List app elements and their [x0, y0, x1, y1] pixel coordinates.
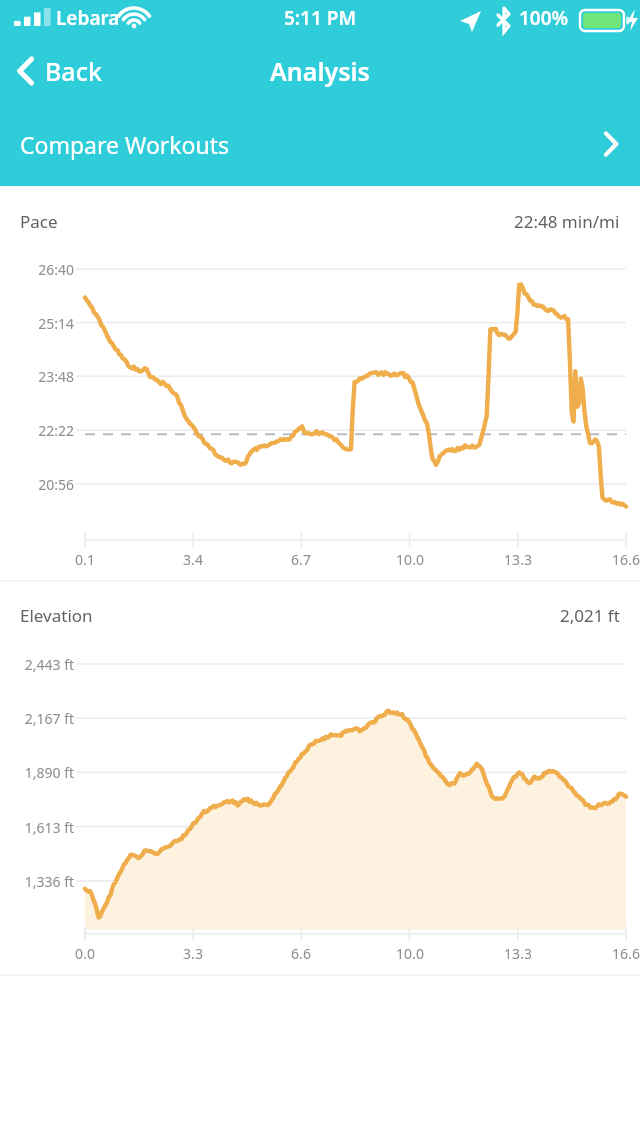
staticText: 3.3: [153, 944, 233, 963]
staticText: 6.6: [261, 944, 341, 963]
staticText: Pace: [20, 210, 58, 233]
staticText: 2,443 ft: [0, 655, 74, 674]
staticText: 25:14: [0, 314, 74, 333]
staticText: 5:11 PM: [284, 5, 357, 31]
staticText: 16.6: [586, 550, 640, 569]
staticText: 1,613 ft: [0, 818, 74, 837]
staticText: Compare Workouts: [20, 129, 230, 160]
staticText: 2,021 ft: [560, 604, 620, 627]
staticText: 10.0: [370, 944, 450, 963]
staticText: Back: [45, 54, 102, 88]
staticText: 100%: [519, 5, 569, 31]
staticText: 22:22: [0, 421, 74, 440]
staticText: 23:48: [0, 367, 74, 386]
staticText: 2,167 ft: [0, 709, 74, 728]
staticText: 0.1: [45, 550, 125, 569]
staticText: 10.0: [370, 550, 450, 569]
staticText: 22:48 min/mi: [514, 210, 620, 233]
staticText: 0.0: [45, 944, 125, 963]
staticText: 13.3: [478, 944, 558, 963]
staticText: 16.6: [586, 944, 640, 963]
staticText: Elevation: [20, 604, 93, 627]
button[interactable]: Compare Workouts: [0, 102, 640, 186]
staticText: 6.7: [261, 550, 341, 569]
staticText: 1,336 ft: [0, 872, 74, 891]
staticText: 1,890 ft: [0, 763, 74, 782]
staticText: Lebara: [56, 5, 120, 31]
staticText: Analysis: [270, 54, 370, 88]
staticText: 20:56: [0, 475, 74, 494]
staticText: 26:40: [0, 260, 74, 279]
staticText: 13.3: [478, 550, 558, 569]
staticText: 3.4: [153, 550, 233, 569]
button[interactable]: Back: [0, 40, 118, 102]
